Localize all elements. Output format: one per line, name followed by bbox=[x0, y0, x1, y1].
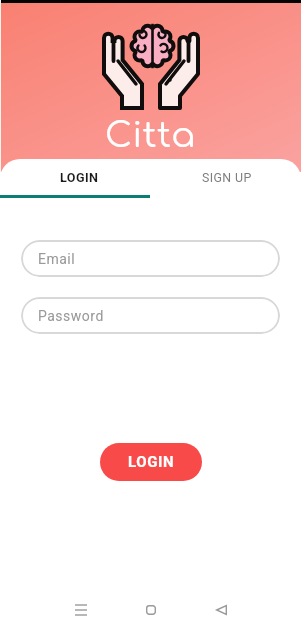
button[interactable]: Email bbox=[21, 240, 280, 277]
staticText: Password bbox=[38, 308, 104, 324]
staticText: SIGN UP bbox=[202, 170, 252, 185]
staticText: Email bbox=[38, 251, 76, 267]
button[interactable]: Home bbox=[116, 591, 186, 628]
button[interactable]: Password bbox=[21, 297, 280, 334]
button[interactable]: SIGN UP bbox=[153, 159, 301, 195]
staticText: Citta bbox=[105, 116, 196, 155]
button[interactable]: LOGIN bbox=[5, 159, 153, 195]
button[interactable]: Back bbox=[186, 591, 256, 628]
button[interactable]: Recent apps bbox=[45, 591, 116, 628]
staticText: LOGIN bbox=[128, 453, 175, 471]
staticText: LOGIN bbox=[60, 170, 99, 185]
button[interactable]: LOGIN bbox=[100, 443, 202, 481]
